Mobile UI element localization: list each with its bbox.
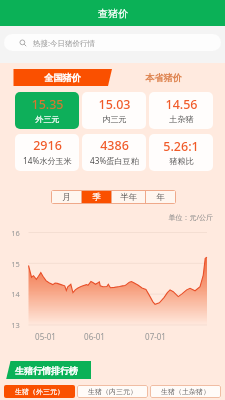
button[interactable]: 半年 — [112, 191, 145, 203]
button[interactable]: 15.35 — [15, 92, 79, 129]
staticText: 月 — [62, 192, 71, 203]
button[interactable]: 生猪（土杂猪） — [150, 385, 221, 398]
staticText: 13 — [11, 320, 20, 330]
staticText: 14 — [11, 289, 20, 299]
staticText: 内三元 — [102, 114, 127, 124]
button[interactable]: 2916 — [15, 134, 79, 171]
staticText: 15.03 — [98, 96, 131, 113]
staticText: 年 — [156, 192, 165, 203]
staticText: 查猪价 — [98, 7, 128, 20]
staticText: 外三元 — [35, 114, 60, 124]
button[interactable]: 热搜:今日猪价行情 — [4, 34, 221, 51]
staticText: 06-01 — [79, 331, 110, 342]
button[interactable]: 本省猪价 — [114, 69, 213, 86]
staticText: 43%蛋白豆粕 — [90, 155, 139, 166]
staticText: 16 — [11, 228, 20, 238]
staticText: 05-01 — [30, 331, 61, 342]
button[interactable]: 5.26:1 — [149, 134, 213, 171]
staticText: 全国猪价 — [44, 72, 81, 84]
button[interactable]: 4386 — [82, 134, 146, 171]
button[interactable]: 季 — [82, 191, 111, 203]
staticText: 季 — [92, 192, 101, 203]
button[interactable]: 14.56 — [149, 92, 213, 129]
staticText: 生猪行情排行榜 — [15, 365, 78, 376]
staticText: 15 — [11, 259, 20, 269]
staticText: 生猪（外三元） — [15, 387, 64, 396]
staticText: 生猪（土杂猪） — [161, 387, 210, 396]
staticText: 半年 — [120, 192, 137, 203]
staticText: 热搜:今日猪价行情 — [33, 38, 96, 48]
staticText: 猪粮比 — [169, 156, 194, 166]
button[interactable]: 全国猪价 — [13, 69, 112, 86]
staticText: 14.56 — [165, 96, 198, 113]
staticText: 单位：元/公斤 — [145, 213, 213, 223]
button[interactable]: 生猪（外三元） — [4, 385, 75, 398]
staticText: 5.26:1 — [163, 138, 199, 155]
staticText: 生猪（内三元） — [88, 387, 137, 396]
staticText: 本省猪价 — [145, 72, 182, 84]
button[interactable]: 15.03 — [82, 92, 146, 129]
button[interactable]: 生猪（内三元） — [77, 385, 148, 398]
staticText: 4386 — [100, 137, 129, 154]
staticText: 2916 — [33, 137, 62, 154]
staticText: 07-01 — [140, 331, 171, 342]
staticText: 土杂猪 — [169, 114, 194, 124]
button[interactable]: 月 — [52, 191, 81, 203]
button[interactable]: 年 — [146, 191, 175, 203]
staticText: 15.35 — [31, 96, 64, 113]
staticText: 14%水分玉米 — [23, 155, 72, 166]
button[interactable]: 生猪行情排行榜 — [7, 361, 86, 379]
